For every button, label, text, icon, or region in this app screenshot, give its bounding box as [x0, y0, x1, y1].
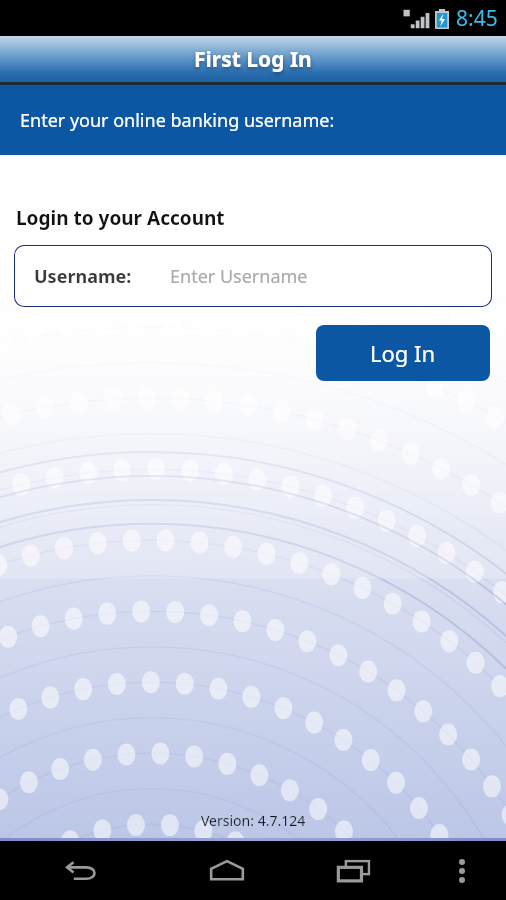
button[interactable]: Home [163, 841, 290, 900]
staticText: Enter your online banking username: [20, 108, 335, 133]
staticText: First Log In [194, 45, 312, 74]
button[interactable]: More options [417, 841, 506, 900]
staticText: Login to your Account [16, 205, 225, 231]
staticText: Log In [370, 338, 436, 368]
staticText: Username: [34, 264, 132, 289]
staticText: Version: 4.7.124 [201, 811, 306, 830]
button[interactable]: Recent apps [290, 841, 417, 900]
button[interactable]: Log In [316, 325, 490, 381]
button[interactable]: Back [0, 841, 163, 900]
button[interactable]: Username: [14, 245, 492, 307]
staticText: Enter Username [170, 264, 308, 289]
staticText: 8:45 [456, 4, 498, 33]
